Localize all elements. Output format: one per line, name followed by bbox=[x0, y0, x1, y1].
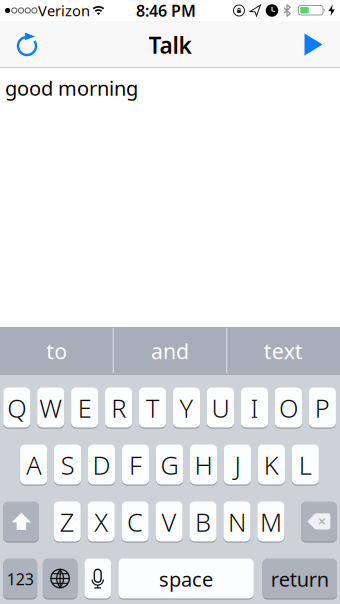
button[interactable]: Q bbox=[3, 387, 30, 428]
staticText: U bbox=[211, 391, 229, 425]
button[interactable]: G bbox=[156, 444, 183, 485]
button[interactable]: B bbox=[189, 501, 217, 542]
staticText: H bbox=[194, 448, 212, 482]
staticText: text bbox=[264, 337, 303, 365]
button[interactable]: 123 bbox=[3, 558, 37, 599]
staticText: F bbox=[129, 448, 142, 482]
button[interactable]: D bbox=[88, 444, 115, 485]
staticText: G bbox=[160, 448, 178, 482]
button[interactable]: E bbox=[71, 387, 98, 428]
staticText: N bbox=[228, 505, 246, 539]
button[interactable] bbox=[301, 501, 337, 542]
staticText: 8:46 PM bbox=[136, 0, 196, 21]
staticText: and bbox=[151, 337, 189, 365]
staticText: O bbox=[279, 391, 298, 425]
staticText: C bbox=[127, 505, 143, 539]
button[interactable]: Y bbox=[173, 387, 200, 428]
staticText: D bbox=[93, 448, 111, 482]
staticText: to bbox=[46, 337, 67, 365]
staticText: space bbox=[159, 566, 213, 592]
staticText: 123 bbox=[7, 568, 34, 590]
staticText: Talk bbox=[148, 30, 191, 60]
button[interactable]: K bbox=[258, 444, 285, 485]
staticText: S bbox=[61, 448, 75, 482]
staticText: P bbox=[315, 391, 330, 425]
button[interactable] bbox=[7, 26, 47, 66]
staticText: I bbox=[250, 391, 258, 425]
staticText: V bbox=[161, 505, 176, 539]
button[interactable]: J bbox=[224, 444, 251, 485]
button[interactable]: N bbox=[223, 501, 250, 542]
button[interactable]: W bbox=[37, 387, 64, 428]
staticText: return bbox=[271, 566, 329, 592]
button[interactable]: text bbox=[227, 327, 340, 375]
button[interactable]: space bbox=[118, 558, 254, 599]
staticText: W bbox=[39, 391, 62, 425]
button[interactable]: A bbox=[20, 444, 47, 485]
button[interactable]: T bbox=[139, 387, 166, 428]
button[interactable]: V bbox=[155, 501, 183, 542]
button[interactable] bbox=[43, 558, 77, 599]
staticText: L bbox=[299, 448, 312, 482]
button[interactable]: I bbox=[241, 387, 268, 428]
staticText: M bbox=[260, 505, 282, 539]
button[interactable]: H bbox=[190, 444, 217, 485]
staticText: B bbox=[195, 505, 211, 539]
button[interactable]: P bbox=[309, 387, 336, 428]
button[interactable]: L bbox=[292, 444, 319, 485]
button[interactable]: X bbox=[87, 501, 115, 542]
staticText: J bbox=[234, 448, 240, 482]
button[interactable]: S bbox=[54, 444, 81, 485]
staticText: T bbox=[146, 391, 159, 425]
button[interactable] bbox=[3, 501, 39, 542]
button[interactable]: Z bbox=[54, 501, 81, 542]
button[interactable] bbox=[295, 26, 331, 62]
staticText: Y bbox=[179, 391, 193, 425]
staticText: E bbox=[78, 391, 92, 425]
staticText: Q bbox=[7, 391, 26, 425]
button[interactable]: M bbox=[257, 501, 284, 542]
button[interactable]: return bbox=[262, 558, 337, 599]
button[interactable]: R bbox=[105, 387, 132, 428]
staticText: X bbox=[94, 505, 108, 539]
staticText: R bbox=[111, 391, 126, 425]
staticText: good morning bbox=[5, 75, 138, 101]
staticText: Z bbox=[60, 505, 75, 539]
button[interactable]: U bbox=[207, 387, 234, 428]
button[interactable] bbox=[84, 558, 111, 599]
button[interactable]: to bbox=[0, 327, 113, 375]
button[interactable]: and bbox=[113, 327, 226, 375]
button[interactable]: F bbox=[122, 444, 149, 485]
staticText: A bbox=[26, 448, 41, 482]
staticText: Verizon bbox=[38, 1, 90, 20]
staticText: K bbox=[264, 448, 279, 482]
button[interactable]: C bbox=[121, 501, 149, 542]
button[interactable]: O bbox=[275, 387, 302, 428]
